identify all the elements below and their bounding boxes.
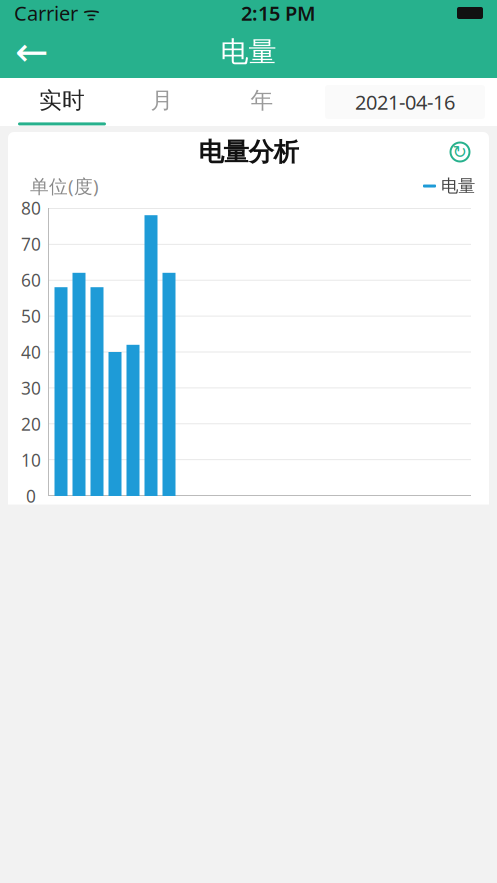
staticText: 电量	[436, 175, 475, 197]
button[interactable]: Refresh	[443, 135, 477, 169]
staticText: 50	[21, 304, 41, 327]
button[interactable]: 实时	[12, 80, 112, 124]
staticText: Carrier	[14, 0, 78, 26]
staticText: 电量分析	[198, 136, 298, 167]
button[interactable]: 年	[212, 80, 312, 124]
staticText: 电量	[220, 35, 276, 69]
staticText: 20	[21, 412, 41, 435]
staticText: 0	[26, 484, 36, 507]
staticText: 30	[21, 376, 41, 399]
staticText: ↻	[452, 142, 467, 162]
staticText: 40	[21, 340, 41, 363]
staticText: 2:15 PM	[241, 0, 316, 26]
staticText: 年	[250, 87, 273, 114]
staticText: 70	[21, 232, 41, 255]
button[interactable]: 月	[112, 80, 212, 124]
staticText: 月	[150, 87, 173, 114]
staticText: 60	[21, 268, 41, 291]
staticText: 80	[21, 196, 41, 219]
staticText: 单位(度)	[30, 174, 99, 198]
button[interactable]: 2021-04-16	[325, 85, 485, 119]
staticText: ←	[15, 29, 49, 75]
staticText: 2021-04-16	[355, 89, 455, 115]
staticText: ᯤ	[78, 1, 100, 25]
button[interactable]: Back	[8, 28, 56, 76]
staticText: 10	[21, 448, 41, 471]
staticText: 实时	[39, 87, 85, 114]
